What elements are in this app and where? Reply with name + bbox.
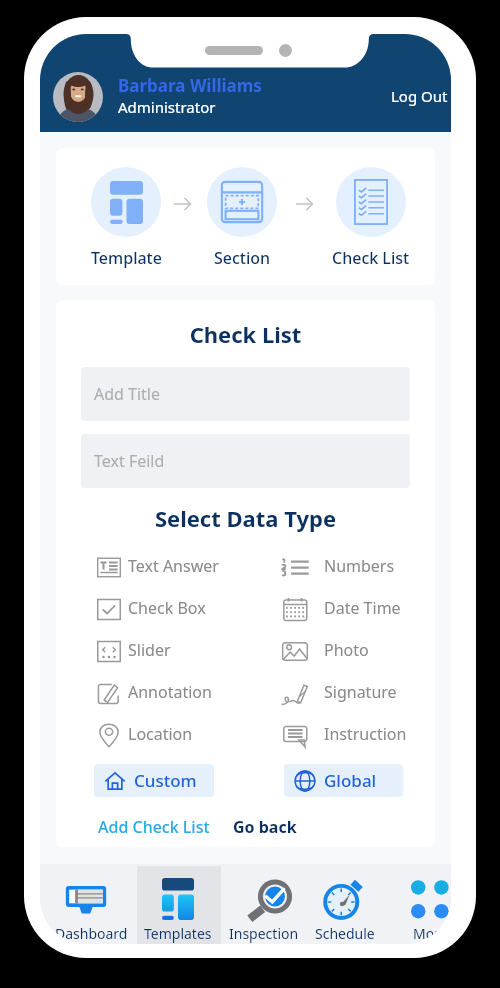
button[interactable]: Text Feild — [81, 434, 410, 488]
button[interactable]: Location — [97, 723, 281, 748]
button[interactable]: Slider — [97, 639, 281, 664]
button[interactable]: More — [388, 864, 451, 944]
button[interactable]: Photo — [281, 639, 426, 664]
staticText: Add Check List — [98, 816, 210, 838]
staticText: More — [413, 924, 448, 943]
staticText: Date Time — [324, 597, 401, 619]
staticText: Dashboard — [55, 924, 128, 943]
staticText: Check List — [332, 247, 410, 269]
button[interactable]: Add Title — [81, 367, 410, 421]
staticText: Log Out — [391, 86, 448, 106]
staticText: Templates — [144, 924, 212, 943]
button[interactable]: Inspection — [222, 864, 306, 944]
staticText: Go back — [233, 816, 297, 838]
button[interactable]: Check Box — [97, 597, 281, 622]
button[interactable]: Global — [284, 764, 403, 797]
staticText: Text Feild — [94, 450, 165, 472]
staticText: Signature — [324, 681, 397, 703]
button[interactable]: Instruction — [281, 723, 426, 748]
staticText: Instruction — [324, 723, 407, 745]
staticText: Photo — [324, 639, 369, 661]
staticText: Location — [128, 723, 193, 745]
staticText: Add Title — [94, 383, 161, 405]
button[interactable]: Signature — [281, 681, 426, 706]
staticText: Check List — [81, 319, 410, 349]
button[interactable]: Schedule — [303, 864, 387, 944]
staticText: Schedule — [315, 924, 375, 943]
staticText: Global — [324, 769, 377, 792]
button[interactable]: Numbers — [281, 555, 426, 580]
staticText: Text Answer — [128, 555, 219, 577]
button[interactable]: Template — [66, 148, 186, 269]
button[interactable]: Check List — [311, 148, 431, 269]
staticText: Template — [91, 247, 162, 269]
button[interactable]: Dashboard — [49, 864, 133, 944]
button[interactable]: Date Time — [281, 597, 426, 622]
staticText: Section — [214, 247, 271, 269]
staticText: Slider — [128, 639, 171, 661]
staticText: Numbers — [324, 555, 395, 577]
button[interactable]: Text Answer — [97, 555, 281, 580]
button[interactable]: Log Out — [385, 80, 451, 112]
staticText: Custom — [134, 769, 197, 792]
staticText: Select Data Type — [81, 503, 410, 533]
staticText: Barbara Williams — [118, 74, 262, 97]
staticText: Check Box — [128, 597, 206, 619]
staticText: Inspection — [229, 924, 299, 943]
button[interactable]: Templates — [136, 864, 220, 944]
button[interactable]: Add Check List — [98, 816, 210, 838]
staticText: Administrator — [118, 97, 216, 117]
button[interactable]: Annotation — [97, 681, 281, 706]
staticText: Annotation — [128, 681, 212, 703]
button[interactable]: Go back — [233, 816, 297, 838]
button[interactable]: Custom — [94, 764, 214, 797]
button[interactable]: Section — [182, 148, 302, 269]
